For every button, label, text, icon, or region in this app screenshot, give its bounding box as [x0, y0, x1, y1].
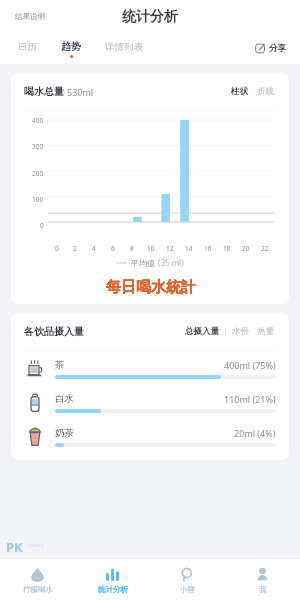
button[interactable]: 柠檬喝水 [0, 558, 75, 602]
staticText: 20 [242, 244, 250, 253]
staticText: 300 [32, 142, 44, 150]
staticText: 柠檬喝水 [23, 585, 53, 594]
button[interactable]: 热量 [255, 324, 276, 339]
staticText: 热量 [257, 326, 274, 337]
button[interactable]: 总摄入量 [183, 324, 221, 339]
staticText: 各饮品摄入量 [24, 325, 84, 338]
staticText: 14 [185, 244, 193, 253]
staticText: 小狸 [180, 585, 195, 594]
staticText: 530ml [67, 86, 94, 98]
button[interactable]: 详情列表 [103, 39, 145, 60]
staticText: 400ml (75%) [224, 359, 276, 371]
staticText: 每日喝水統計 [106, 278, 196, 297]
button[interactable]: 结果说明 [12, 7, 48, 26]
staticText: 每日喝水 [28, 543, 44, 548]
staticText: 总摄入量 [185, 326, 219, 337]
staticText: 110ml (21%) [224, 393, 276, 405]
staticText: 0 [40, 221, 44, 229]
button[interactable]: 分享 [251, 39, 290, 58]
button[interactable]: 奶茶 [11, 426, 289, 448]
staticText: 柱状 [231, 86, 248, 97]
button[interactable]: 白水 [11, 392, 289, 414]
button[interactable]: 水份 [230, 324, 251, 339]
button[interactable]: 小狸 [150, 558, 225, 602]
staticText: 折线 [257, 86, 274, 97]
staticText: 8 [130, 244, 134, 253]
staticText: 20ml (4%) [234, 427, 276, 439]
staticText: 4 [92, 244, 96, 253]
button[interactable]: 茶 [11, 358, 289, 380]
staticText: 16 [204, 244, 212, 253]
button[interactable]: 折线 [255, 84, 276, 99]
staticText: 每日喝水統計 [106, 278, 196, 297]
staticText: 结果说明 [15, 12, 45, 21]
staticText: 10 [147, 244, 155, 253]
staticText: 400 [32, 116, 44, 124]
staticText: 白水 [55, 393, 74, 405]
staticText: 水份 [232, 326, 249, 337]
staticText: 统计分析 [122, 8, 178, 26]
staticText: 200 [32, 169, 44, 177]
staticText: (35 ml) [158, 257, 184, 268]
staticText: 统计分析 [98, 585, 128, 594]
staticText: 日历 [18, 41, 37, 53]
staticText: 平均值 [131, 258, 155, 268]
staticText: 分享 [269, 43, 286, 54]
button[interactable]: 日历 [16, 39, 39, 60]
staticText: 6 [111, 244, 115, 253]
staticText: 22 [261, 244, 269, 253]
staticText: 茶 [55, 359, 65, 371]
button[interactable]: 统计分析 [75, 558, 150, 602]
staticText: 详情列表 [105, 41, 143, 53]
staticText: PK [6, 538, 23, 556]
staticText: 喝水总量 [24, 85, 64, 98]
staticText: 18 [223, 244, 231, 253]
staticText: 0 [55, 244, 59, 253]
staticText: 12 [166, 244, 174, 253]
staticText: 100 [32, 195, 44, 203]
staticText: 奶茶 [55, 427, 74, 439]
staticText: 2 [73, 244, 77, 253]
button[interactable]: 柱状 [229, 84, 250, 99]
button[interactable]: 趋势 [59, 38, 83, 60]
button[interactable]: 我 [225, 558, 300, 602]
staticText: 趋势 [61, 40, 81, 53]
staticText: 我 [259, 585, 267, 594]
